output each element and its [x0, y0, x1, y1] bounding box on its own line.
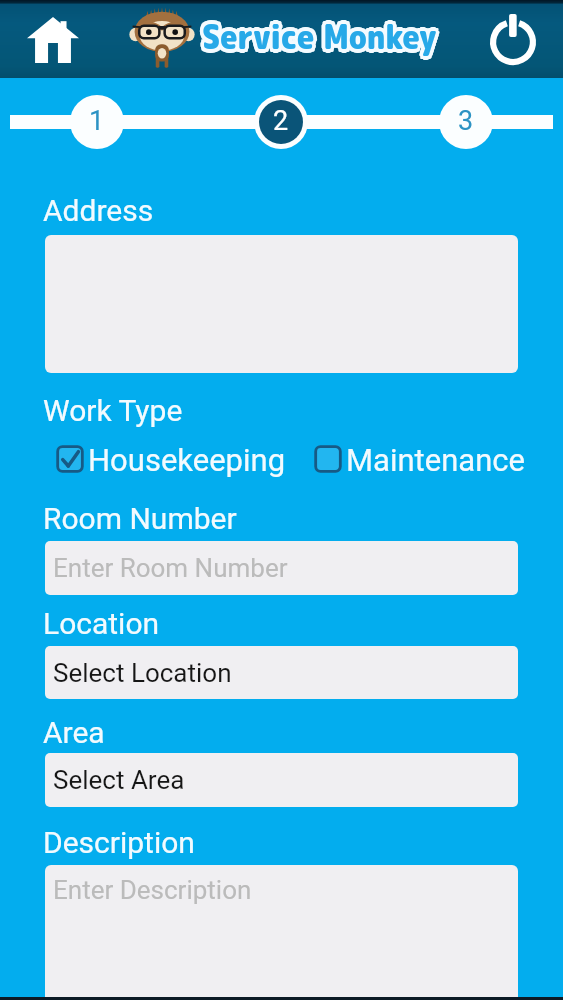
staticText: Service Monkey	[201, 17, 436, 63]
staticText: Service Monkey	[203, 17, 438, 63]
staticText: Service Monkey	[199, 15, 434, 61]
staticText: Service Monkey	[199, 11, 434, 57]
staticText: 2	[273, 105, 289, 137]
button[interactable]: Enter Room Number	[45, 541, 518, 595]
button[interactable]: Log out	[487, 13, 539, 65]
staticText: Select Location	[53, 658, 232, 688]
staticText: Service Monkey	[202, 14, 437, 60]
staticText: Service Monkey	[198, 14, 433, 60]
staticText: Location	[43, 606, 160, 641]
staticText: Enter Room Number	[53, 553, 288, 583]
button[interactable]: Enter Description	[45, 865, 518, 998]
staticText: Work Type	[43, 393, 183, 428]
staticText: Service Monkey	[205, 17, 440, 63]
staticText: Service Monkey	[199, 17, 434, 63]
staticText: Description	[43, 825, 195, 860]
staticText: Housekeeping	[88, 442, 286, 478]
staticText: Area	[43, 715, 105, 750]
button[interactable]: Select Location	[45, 646, 518, 699]
button[interactable]: Maintenance	[314, 441, 525, 477]
staticText: Service Monkey	[205, 11, 440, 57]
staticText: Select Area	[53, 765, 185, 795]
staticText: Service Monkey	[202, 10, 437, 56]
staticText: Maintenance	[346, 442, 525, 478]
staticText: Service Monkey	[199, 13, 434, 59]
button[interactable]: 2	[253, 94, 309, 150]
staticText: Service Monkey	[203, 11, 438, 57]
staticText: Room Number	[43, 501, 237, 536]
staticText: 1	[89, 105, 105, 137]
staticText: Service Monkey	[205, 15, 440, 61]
button[interactable]	[45, 235, 518, 373]
button[interactable]: Home	[27, 13, 79, 65]
button[interactable]: Housekeeping	[56, 441, 286, 477]
staticText: Address	[43, 193, 154, 228]
staticText: Service Monkey	[202, 18, 437, 64]
button[interactable]: Select Area	[45, 753, 518, 807]
staticText: Service Monkey	[206, 14, 440, 60]
staticText: Enter Description	[53, 875, 252, 905]
staticText: Service Monkey	[201, 11, 436, 57]
button[interactable]: 3	[438, 94, 494, 150]
staticText: 3	[458, 105, 474, 137]
button[interactable]: 1	[69, 94, 125, 150]
staticText: Service Monkey	[205, 13, 440, 59]
